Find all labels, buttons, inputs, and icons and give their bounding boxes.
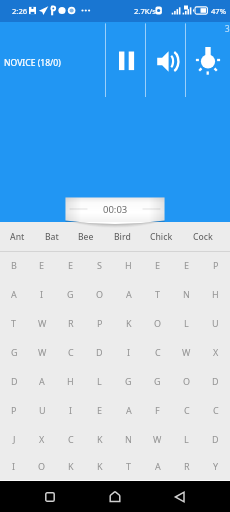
button[interactable]: D xyxy=(0,366,28,395)
staticText: U xyxy=(212,317,219,329)
staticText: I xyxy=(40,288,44,300)
button[interactable]: W xyxy=(28,308,56,337)
staticText: N xyxy=(183,288,190,300)
button[interactable]: U xyxy=(28,395,56,424)
button[interactable]: Ant xyxy=(10,231,25,243)
button[interactable]: E xyxy=(172,250,201,279)
button[interactable]: G xyxy=(0,337,28,366)
button[interactable]: X xyxy=(201,337,230,366)
button[interactable]: K xyxy=(85,453,114,479)
button[interactable]: W xyxy=(172,337,201,366)
button[interactable]: W xyxy=(28,337,56,366)
button[interactable]: I xyxy=(28,279,56,308)
button[interactable]: C xyxy=(143,337,172,366)
button[interactable]: Pause xyxy=(112,46,142,76)
staticText: Cock xyxy=(193,231,213,243)
button[interactable]: C xyxy=(56,337,85,366)
button[interactable]: Chick xyxy=(150,231,173,243)
button[interactable]: Cock xyxy=(193,231,213,243)
button[interactable]: A xyxy=(114,279,143,308)
button[interactable]: Bird xyxy=(114,231,131,243)
button[interactable]: Y xyxy=(201,453,230,479)
button[interactable]: E xyxy=(143,250,172,279)
button[interactable]: C xyxy=(56,424,85,453)
button[interactable]: A xyxy=(0,279,28,308)
staticText: D xyxy=(212,375,219,387)
staticText: W xyxy=(182,346,191,358)
button[interactable]: Hint xyxy=(192,44,224,76)
button[interactable]: I xyxy=(114,337,143,366)
staticText: J xyxy=(13,433,16,445)
button[interactable]: Sound xyxy=(151,46,181,76)
button[interactable]: F xyxy=(143,395,172,424)
staticText: Y xyxy=(213,460,219,472)
button[interactable]: N xyxy=(172,279,201,308)
button[interactable]: D xyxy=(201,366,230,395)
button[interactable]: O xyxy=(143,308,172,337)
button[interactable]: A xyxy=(28,366,56,395)
button[interactable]: E xyxy=(85,395,114,424)
button[interactable]: Recent apps xyxy=(35,482,65,512)
button[interactable]: J xyxy=(0,424,28,453)
button[interactable]: C xyxy=(201,395,230,424)
button[interactable]: A xyxy=(143,453,172,479)
button[interactable]: Bat xyxy=(45,231,59,243)
button[interactable]: K xyxy=(56,453,85,479)
staticText: E xyxy=(155,259,161,271)
button[interactable]: Home xyxy=(100,482,130,512)
button[interactable]: O xyxy=(172,366,201,395)
staticText: O xyxy=(38,460,46,472)
button[interactable]: D xyxy=(85,337,114,366)
button[interactable]: X xyxy=(28,424,56,453)
button[interactable]: L xyxy=(172,308,201,337)
button[interactable]: H xyxy=(56,366,85,395)
button[interactable]: O xyxy=(85,279,114,308)
button[interactable]: T xyxy=(0,308,28,337)
button[interactable]: L xyxy=(172,424,201,453)
button[interactable]: Bee xyxy=(78,231,94,243)
button[interactable]: O xyxy=(28,453,56,479)
button[interactable]: S xyxy=(85,250,114,279)
button[interactable]: H xyxy=(201,279,230,308)
staticText: H xyxy=(125,259,132,271)
button[interactable]: L xyxy=(85,366,114,395)
staticText: O xyxy=(183,375,191,387)
button[interactable]: I xyxy=(0,453,28,479)
button[interactable]: 00:03 xyxy=(65,197,165,222)
button[interactable]: Back xyxy=(165,482,195,512)
staticText: 47% xyxy=(211,6,226,16)
staticText: P xyxy=(97,317,103,329)
button[interactable]: K xyxy=(114,308,143,337)
button[interactable]: E xyxy=(56,250,85,279)
staticText: E xyxy=(68,259,74,271)
button[interactable]: P xyxy=(201,250,230,279)
button[interactable]: T xyxy=(114,453,143,479)
button[interactable]: R xyxy=(172,453,201,479)
staticText: F xyxy=(155,404,160,416)
button[interactable]: P xyxy=(85,308,114,337)
button[interactable]: P xyxy=(0,395,28,424)
button[interactable]: A xyxy=(114,395,143,424)
button[interactable]: N xyxy=(114,424,143,453)
button[interactable]: G xyxy=(114,366,143,395)
staticText: Chick xyxy=(150,231,173,243)
button[interactable]: G xyxy=(56,279,85,308)
button[interactable]: B xyxy=(0,250,28,279)
button[interactable]: I xyxy=(56,395,85,424)
button[interactable]: T xyxy=(143,279,172,308)
staticText: E xyxy=(184,259,190,271)
staticText: A xyxy=(126,404,132,416)
button[interactable]: D xyxy=(201,424,230,453)
staticText: W xyxy=(153,433,162,445)
button[interactable]: C xyxy=(172,395,201,424)
staticText: G xyxy=(125,375,132,387)
staticText: C xyxy=(155,346,161,358)
button[interactable]: H xyxy=(114,250,143,279)
button[interactable]: U xyxy=(201,308,230,337)
staticText: X xyxy=(39,433,45,445)
button[interactable]: W xyxy=(143,424,172,453)
button[interactable]: G xyxy=(143,366,172,395)
button[interactable]: K xyxy=(85,424,114,453)
button[interactable]: E xyxy=(28,250,56,279)
button[interactable]: R xyxy=(56,308,85,337)
